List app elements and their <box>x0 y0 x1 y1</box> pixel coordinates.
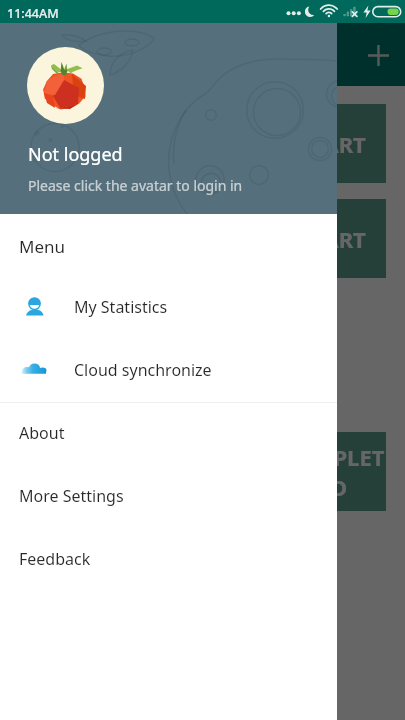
button[interactable]: Avatar, tap to log in <box>27 47 104 124</box>
staticText: COMPLETED <box>280 442 386 502</box>
staticText: Not logged <box>28 142 123 167</box>
button[interactable]: My Statistics <box>0 276 337 339</box>
button[interactable]: Reading <box>19 104 386 183</box>
staticText: About <box>19 422 65 444</box>
staticText: Workout <box>37 227 280 250</box>
staticText: Cloud synchronize <box>74 359 212 381</box>
staticText: More Settings <box>19 485 124 507</box>
button[interactable]: Add task <box>356 33 400 77</box>
button[interactable]: About <box>0 403 337 466</box>
button[interactable]: More Settings <box>0 466 337 529</box>
staticText: Please click the avatar to login in <box>28 176 243 195</box>
staticText: Feedback <box>19 548 91 570</box>
staticText: Reading <box>37 132 280 155</box>
button[interactable]: Workout <box>19 199 386 278</box>
staticText: 11:44AM <box>7 5 59 22</box>
button[interactable]: Study <box>19 432 386 511</box>
staticText: START <box>300 224 366 254</box>
button[interactable]: Feedback <box>0 529 337 592</box>
staticText: START <box>300 129 366 159</box>
button[interactable]: Cloud synchronize <box>0 339 337 402</box>
staticText: Menu <box>19 235 66 258</box>
staticText: My Statistics <box>74 296 168 318</box>
